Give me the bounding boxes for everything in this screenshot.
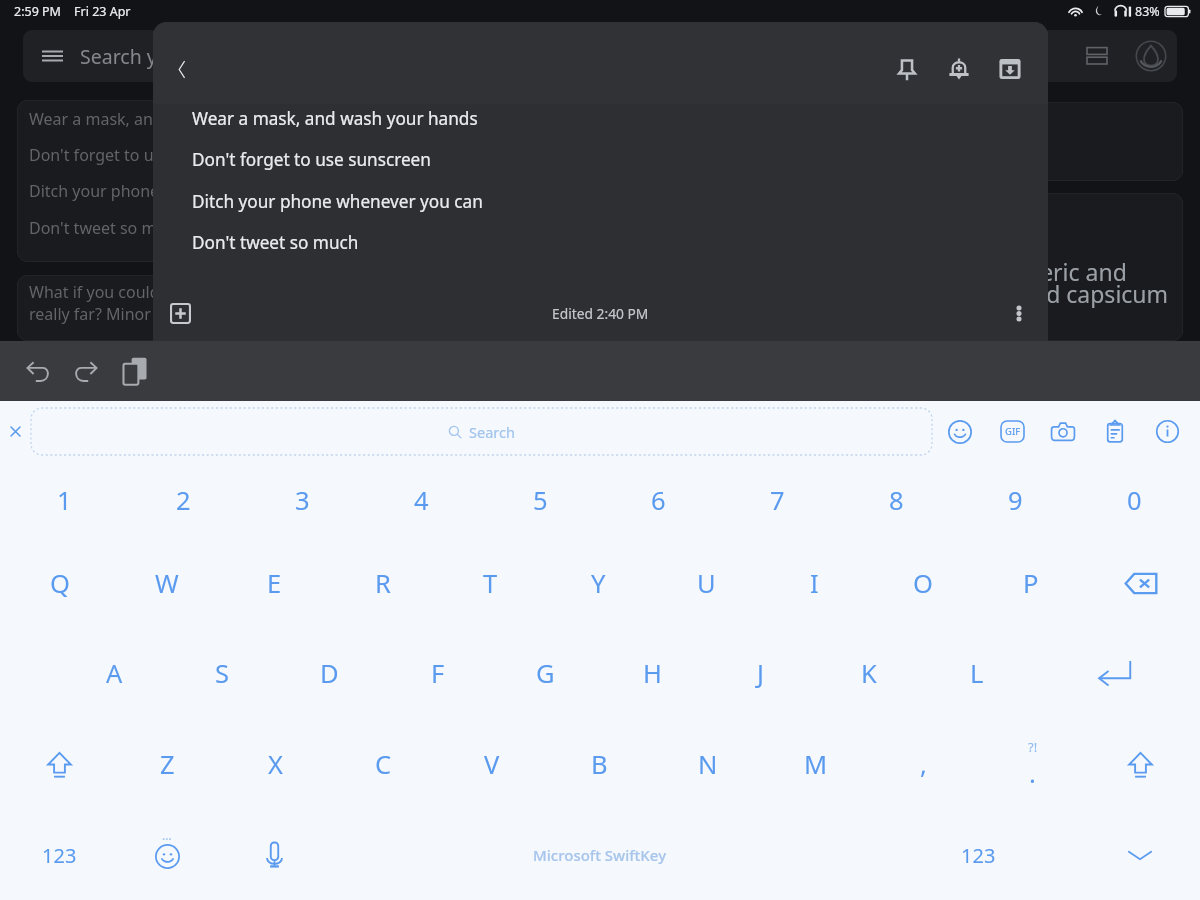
button[interactable]: , — [870, 720, 977, 808]
button[interactable]: 4 — [362, 458, 480, 542]
button[interactable]: Green tea, ginger, turmeric and — [613, 193, 1183, 341]
button[interactable]: U — [653, 540, 760, 626]
button[interactable]: Z — [114, 720, 221, 808]
staticText: 4 — [414, 483, 429, 518]
button[interactable]: Shift — [1086, 720, 1194, 808]
button[interactable]: Camera — [1037, 401, 1089, 462]
staticText: L — [970, 656, 984, 691]
button[interactable]: 2 — [124, 458, 242, 542]
button[interactable]: K — [815, 629, 922, 717]
button[interactable]: A tall glass of lemon — [613, 102, 1183, 181]
button[interactable]: Info — [1141, 401, 1193, 462]
staticText: E — [267, 566, 282, 601]
button[interactable]: Add — [156, 285, 204, 341]
staticText: Don't forget to use sunscreen — [192, 148, 431, 171]
staticText: W — [155, 566, 179, 601]
staticText: N — [698, 747, 718, 782]
button[interactable]: 6 — [599, 458, 717, 542]
staticText: Wear a mask, and wash your hands — [29, 108, 295, 130]
staticText: O — [913, 566, 933, 601]
staticText: Y — [591, 566, 606, 601]
button[interactable]: V — [438, 720, 545, 808]
button[interactable]: Archive — [984, 43, 1036, 95]
button[interactable]: A — [61, 629, 168, 717]
button[interactable]: O — [869, 540, 976, 626]
staticText: K — [861, 656, 877, 691]
staticText: Fri 23 Apr — [74, 3, 131, 20]
button[interactable]: Reminder — [933, 43, 985, 95]
button[interactable]: Y — [545, 540, 652, 626]
staticText: Z — [160, 747, 175, 782]
staticText: ?! — [1028, 738, 1038, 756]
button[interactable]: Shift — [5, 720, 113, 808]
button[interactable]: ?! — [979, 720, 1086, 808]
button[interactable]: Copy — [111, 341, 159, 401]
staticText: 1 — [57, 483, 72, 518]
button[interactable]: GIF — [986, 401, 1038, 462]
button[interactable]: Search your notes — [23, 30, 1177, 82]
button[interactable]: Pin — [881, 43, 933, 95]
button[interactable]: Wear a mask, and wash your hands — [17, 100, 587, 262]
button[interactable]: S — [168, 629, 275, 717]
button[interactable]: P — [977, 540, 1084, 626]
button[interactable]: F — [384, 629, 491, 717]
button[interactable]: J — [707, 629, 814, 717]
button[interactable]: Enter — [1058, 629, 1170, 717]
button[interactable]: 3 — [243, 458, 361, 542]
button[interactable]: Emoji — [934, 401, 986, 462]
staticText: 2:59 PM — [14, 3, 61, 20]
staticText: D — [320, 656, 339, 691]
staticText: S — [215, 656, 229, 691]
button[interactable]: B — [546, 720, 653, 808]
button[interactable]: N — [654, 720, 761, 808]
staticText: , — [920, 747, 927, 782]
button[interactable]: Space — [330, 810, 870, 900]
button[interactable]: Hide keyboard — [1086, 810, 1194, 900]
button[interactable]: Search — [31, 408, 932, 455]
staticText: Search your notes — [80, 43, 245, 70]
staticText: Microsoft SwiftKey — [533, 845, 667, 865]
button[interactable]: 8 — [837, 458, 955, 542]
button[interactable]: I — [761, 540, 868, 626]
button[interactable]: 0 — [1075, 458, 1193, 542]
button[interactable]: H — [599, 629, 706, 717]
button[interactable]: R — [329, 540, 436, 626]
button[interactable]: T — [437, 540, 544, 626]
button[interactable]: W — [113, 540, 220, 626]
staticText: GIF — [1005, 425, 1021, 438]
button[interactable]: 7 — [718, 458, 836, 542]
button[interactable]: Redo — [62, 341, 110, 401]
button[interactable]: Backspace — [1086, 540, 1196, 626]
button[interactable]: 5 — [481, 458, 599, 542]
button[interactable]: More options — [995, 285, 1043, 341]
staticText: X — [268, 747, 283, 782]
button[interactable]: M — [762, 720, 869, 808]
button[interactable]: 1 — [5, 458, 123, 542]
button[interactable]: X — [222, 720, 329, 808]
button[interactable]: E — [221, 540, 328, 626]
button[interactable]: D — [276, 629, 383, 717]
button[interactable]: 123 — [924, 810, 1032, 900]
button[interactable]: 123 — [5, 810, 113, 900]
button[interactable]: Clipboard — [1089, 401, 1141, 462]
button[interactable]: G — [492, 629, 599, 717]
button[interactable]: Emoji — [113, 810, 221, 900]
staticText: 123 — [961, 842, 996, 869]
staticText: Green tea, ginger, turmeric and — [789, 256, 1127, 286]
staticText: 5 — [533, 483, 548, 518]
button[interactable]: Back — [156, 43, 208, 95]
staticText: Ditch your phone whenever you can — [192, 190, 483, 213]
button[interactable]: What if you could throw a ball — [17, 275, 587, 341]
button[interactable]: Close — [0, 401, 31, 462]
button[interactable]: Q — [6, 540, 113, 626]
staticText: 3 — [295, 483, 310, 518]
button[interactable]: L — [923, 629, 1030, 717]
staticText: 0 — [1127, 483, 1142, 518]
button[interactable]: Voice input — [220, 810, 328, 900]
button[interactable]: Undo — [14, 341, 62, 401]
button[interactable]: C — [330, 720, 437, 808]
staticText: 123 — [42, 842, 77, 869]
button[interactable]: 9 — [956, 458, 1074, 542]
staticText: T — [483, 566, 498, 601]
staticText: H — [643, 656, 662, 691]
